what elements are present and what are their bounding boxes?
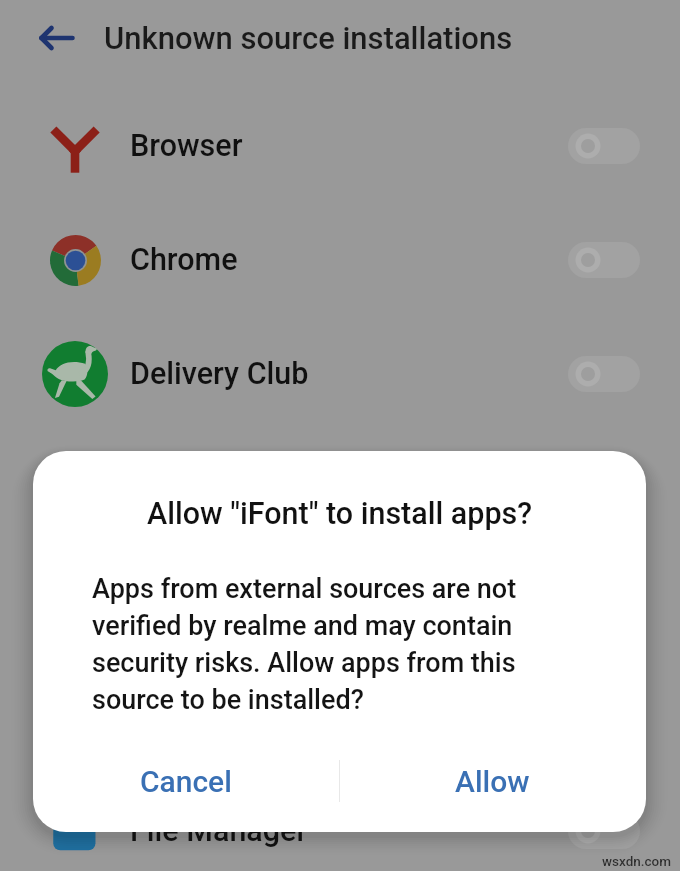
staticText: Cancel [140,764,232,799]
button[interactable]: Toggle [568,356,640,392]
button[interactable]: Files [0,545,680,659]
staticText: Facebook [130,470,263,506]
staticText: Gallery [130,699,226,735]
button[interactable]: Gallery [0,660,680,774]
staticText: Allow "iFont" to install apps? [33,496,646,532]
button[interactable]: Delivery Club [0,317,680,431]
staticText: Allow [455,764,530,799]
button[interactable]: Facebook [0,431,680,545]
button[interactable]: Toggle [568,128,640,164]
staticText: Chrome [130,242,238,278]
button[interactable]: Back [29,9,87,67]
button[interactable]: File Manager [0,774,680,871]
staticText: Delivery Club [130,356,309,392]
staticText: Apps from external sources are not verif… [92,573,522,716]
button[interactable]: Allow [339,736,646,826]
button[interactable]: Browser [0,89,680,203]
button[interactable]: Chrome [0,203,680,317]
staticText: Unknown source installations [104,20,513,56]
staticText: File Manager [130,813,308,849]
button[interactable]: Toggle [568,813,640,849]
button[interactable]: Toggle [568,242,640,278]
staticText: wsxdn.com [602,853,671,869]
staticText: Browser [130,128,243,164]
button[interactable]: Cancel [33,736,339,826]
staticText: Files [130,584,195,620]
